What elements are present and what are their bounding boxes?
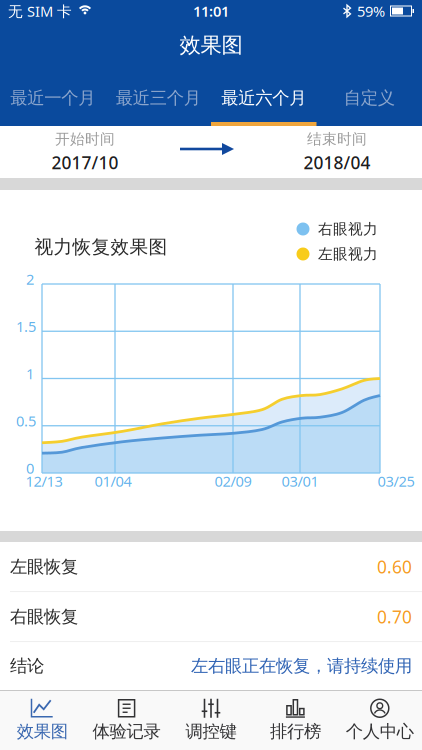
button[interactable]: 最近六个月	[211, 83, 316, 113]
staticText: 最近三个月	[116, 87, 201, 109]
staticText: 0.60	[377, 555, 412, 578]
staticText: 右眼恢复	[10, 606, 78, 627]
button[interactable]: 最近三个月	[105, 83, 211, 113]
button[interactable]: 自定义	[316, 83, 422, 113]
staticText: 效果图	[179, 32, 242, 58]
button[interactable]: 开始时间	[25, 130, 145, 174]
staticText: 2017/10	[51, 151, 118, 174]
staticText: 自定义	[344, 87, 395, 109]
staticText: 59%	[357, 1, 385, 21]
staticText: 左眼恢复	[10, 556, 78, 577]
staticText: 1	[26, 364, 34, 383]
staticText: 体验记录	[93, 721, 161, 742]
staticText: 最近六个月	[221, 87, 306, 109]
staticText: 03/25	[377, 471, 414, 491]
staticText: 0.70	[377, 605, 412, 628]
staticText: 0.5	[16, 411, 36, 430]
button[interactable]: 体验记录	[84, 694, 169, 746]
staticText: 个人中心	[346, 721, 414, 742]
staticText: 左眼视力	[318, 245, 378, 263]
staticText: 结束时间	[307, 130, 367, 148]
staticText: 01/04	[94, 471, 131, 491]
staticText: 无 SIM 卡	[8, 1, 72, 21]
staticText: 开始时间	[55, 130, 115, 148]
staticText: 2	[26, 269, 34, 289]
button[interactable]: 效果图	[0, 694, 84, 746]
staticText: 左右眼正在恢复，请持续使用	[191, 655, 412, 677]
staticText: 调控键	[185, 721, 236, 742]
staticText: 效果图	[17, 721, 68, 742]
staticText: 0	[26, 458, 34, 478]
staticText: 02/09	[214, 471, 251, 491]
staticText: 视力恢复效果图	[34, 235, 167, 258]
staticText: 排行榜	[270, 721, 321, 742]
staticText: 11:01	[193, 1, 229, 21]
staticText: 2018/04	[303, 151, 370, 174]
staticText: 03/01	[281, 471, 318, 491]
button[interactable]: 调控键	[169, 694, 253, 746]
button[interactable]: 个人中心	[338, 694, 422, 746]
staticText: 12/13	[25, 471, 62, 491]
button[interactable]: 最近一个月	[0, 83, 105, 113]
staticText: 结论	[10, 655, 44, 677]
staticText: 1.5	[16, 316, 36, 336]
staticText: 最近一个月	[10, 87, 95, 109]
button[interactable]: 排行榜	[253, 694, 338, 746]
button[interactable]: 结束时间	[277, 130, 397, 174]
staticText: 右眼视力	[318, 220, 378, 238]
